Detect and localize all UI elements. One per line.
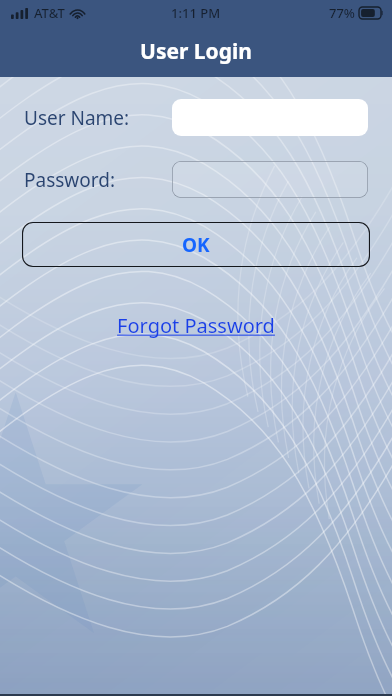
staticText: 1:11 PM [171, 4, 221, 22]
staticText: AT&T [34, 4, 65, 22]
button[interactable]: OK [22, 222, 370, 267]
staticText: Forgot Password [117, 312, 275, 339]
staticText: 77% [329, 4, 355, 22]
staticText: Password: [24, 167, 116, 193]
staticText: OK [182, 232, 210, 258]
button[interactable] [172, 99, 368, 136]
button[interactable]: Forgot Password [111, 310, 281, 341]
staticText: User Name: [24, 105, 130, 131]
button[interactable] [172, 161, 368, 198]
staticText: User Login [140, 37, 252, 66]
